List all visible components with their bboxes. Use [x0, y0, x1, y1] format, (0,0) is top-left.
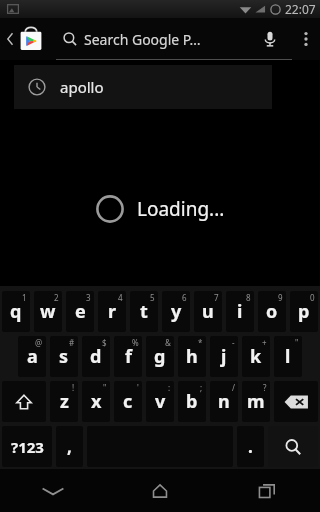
staticText: &	[165, 337, 171, 348]
staticText: apollo	[60, 77, 104, 97]
staticText: %	[132, 337, 139, 348]
staticText: ?123	[11, 437, 44, 457]
button[interactable]: x	[82, 381, 110, 422]
staticText: 8	[246, 292, 251, 303]
button[interactable]: Symbols	[2, 426, 52, 467]
staticText: d	[90, 344, 102, 369]
staticText: f	[125, 344, 132, 369]
button[interactable]: e	[66, 291, 94, 332]
staticText: e	[75, 299, 86, 324]
button[interactable]: Comma	[56, 426, 83, 467]
staticText: g	[154, 344, 166, 369]
staticText: +	[262, 337, 267, 348]
staticText: r	[108, 299, 117, 324]
staticText: m	[247, 389, 265, 414]
button[interactable]: Period	[237, 426, 264, 467]
staticText: -	[232, 337, 235, 348]
staticText: v	[155, 389, 166, 414]
staticText: :	[168, 382, 171, 393]
staticText: z	[60, 389, 69, 414]
staticText: Search Google P…	[84, 30, 201, 49]
button[interactable]: a	[18, 336, 46, 377]
staticText: 3	[86, 292, 91, 303]
button[interactable]: w	[34, 291, 62, 332]
button[interactable]: v	[146, 381, 174, 422]
button[interactable]: q	[2, 291, 30, 332]
button[interactable]: Shift	[2, 381, 46, 422]
button[interactable]: j	[210, 336, 238, 377]
button[interactable]: Hide keyboard	[0, 469, 106, 512]
button[interactable]: d	[82, 336, 110, 377]
button[interactable]: n	[210, 381, 238, 422]
button[interactable]: p	[290, 291, 318, 332]
staticText: ,	[67, 435, 72, 458]
staticText: 4	[118, 292, 123, 303]
staticText: #	[69, 337, 75, 348]
button[interactable]: Voice search	[248, 18, 292, 60]
staticText: 0	[310, 292, 315, 303]
button[interactable]: u	[194, 291, 222, 332]
button[interactable]: Delete	[274, 381, 318, 422]
button[interactable]: k	[242, 336, 270, 377]
staticText: 5	[150, 292, 155, 303]
staticText: "	[295, 337, 299, 348]
button[interactable]: Search	[268, 426, 318, 467]
staticText: c	[123, 389, 133, 414]
staticText: l	[285, 344, 291, 369]
staticText: 1	[22, 292, 27, 303]
button[interactable]: Recent apps	[213, 469, 320, 512]
staticText: /	[232, 382, 235, 393]
staticText: ;	[200, 382, 203, 393]
staticText: 2	[54, 292, 59, 303]
button[interactable]: z	[50, 381, 78, 422]
staticText: j	[221, 344, 227, 369]
staticText: h	[186, 344, 198, 369]
button[interactable]: m	[242, 381, 270, 422]
staticText: !	[72, 382, 75, 393]
button[interactable]: o	[258, 291, 286, 332]
button[interactable]: Search Google P…	[56, 18, 248, 60]
button[interactable]: r	[98, 291, 126, 332]
staticText: ?	[263, 382, 267, 393]
button[interactable]: More options	[292, 18, 320, 60]
button[interactable]: apollo	[14, 65, 272, 109]
staticText: i	[237, 299, 243, 324]
staticText: u	[202, 299, 214, 324]
staticText: t	[140, 299, 148, 324]
staticText: a	[27, 344, 38, 369]
staticText: 9	[278, 292, 283, 303]
staticText: 6	[182, 292, 187, 303]
button[interactable]: f	[114, 336, 142, 377]
button[interactable]: t	[130, 291, 158, 332]
staticText: p	[298, 299, 310, 324]
staticText: *	[198, 337, 203, 348]
button[interactable]: s	[50, 336, 78, 377]
staticText: q	[10, 299, 22, 324]
staticText: "	[103, 382, 107, 393]
button[interactable]: g	[146, 336, 174, 377]
staticText: '	[137, 382, 139, 393]
staticText: x	[91, 389, 102, 414]
staticText: y	[171, 299, 182, 324]
staticText: Loading...	[137, 196, 225, 222]
button[interactable]: i	[226, 291, 254, 332]
staticText: @	[35, 337, 43, 348]
staticText: k	[250, 344, 262, 369]
button[interactable]: y	[162, 291, 190, 332]
staticText: 7	[214, 292, 219, 303]
staticText: .	[248, 435, 253, 458]
button[interactable]: b	[178, 381, 206, 422]
staticText: 22:07	[285, 1, 316, 17]
button[interactable]: Navigate up, Google Play	[0, 18, 56, 60]
staticText: b	[186, 389, 198, 414]
button[interactable]: h	[178, 336, 206, 377]
staticText: o	[266, 299, 278, 324]
staticText: n	[218, 389, 230, 414]
staticText: $	[102, 337, 107, 348]
staticText: w	[40, 299, 56, 324]
button[interactable]: Home	[106, 469, 213, 512]
button[interactable]: l	[274, 336, 302, 377]
button[interactable]: c	[114, 381, 142, 422]
staticText: s	[59, 344, 69, 369]
